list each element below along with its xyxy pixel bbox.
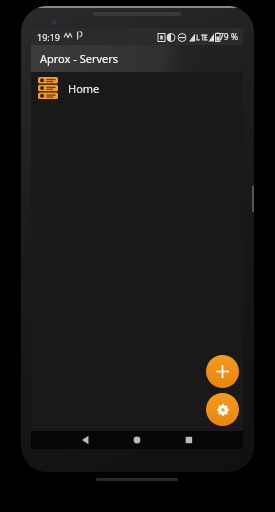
staticText: 79 % (219, 31, 238, 43)
button[interactable]: Settings (206, 393, 239, 426)
button[interactable]: Add server (206, 355, 239, 388)
staticText: Home (68, 81, 100, 96)
staticText: Aprox - Servers (40, 51, 119, 66)
button[interactable]: Home (31, 72, 243, 104)
staticText: 19:19 (37, 31, 61, 43)
